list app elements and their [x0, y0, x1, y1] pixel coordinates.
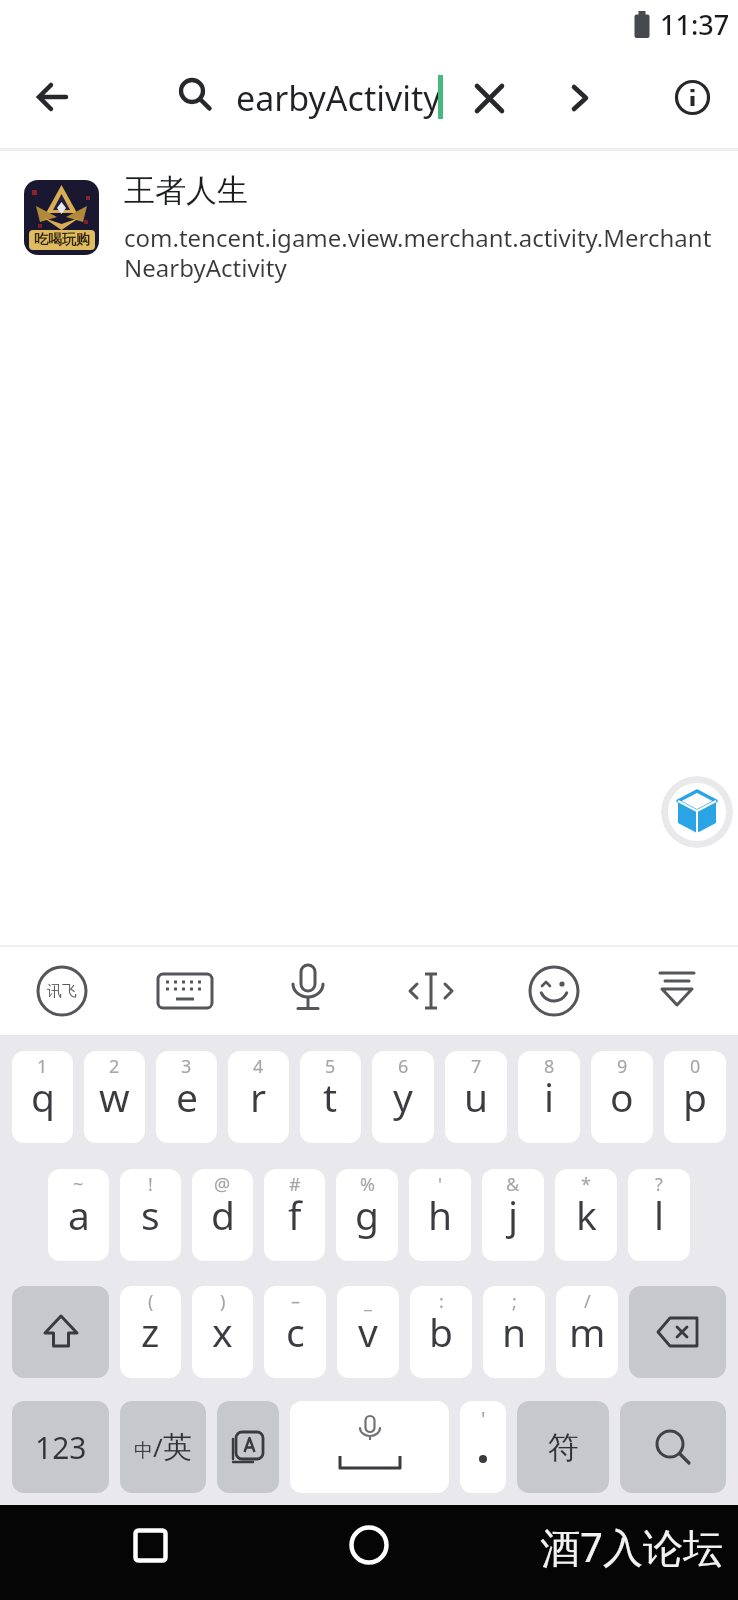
- staticText: 讯飞: [47, 982, 77, 1001]
- staticText: com.tencent.igame.view.merchant.activity…: [124, 221, 712, 284]
- staticText: %: [360, 1172, 375, 1197]
- button[interactable]: &: [482, 1169, 544, 1261]
- button[interactable]: 3: [156, 1051, 217, 1143]
- button[interactable]: [217, 1401, 279, 1493]
- button[interactable]: 5: [300, 1051, 361, 1143]
- button[interactable]: [369, 947, 492, 1035]
- staticText: l: [654, 1188, 665, 1241]
- button[interactable]: [492, 947, 615, 1035]
- staticText: j: [508, 1188, 519, 1241]
- staticText: 123: [35, 1427, 87, 1468]
- staticText: m: [569, 1305, 606, 1358]
- button[interactable]: [126, 1521, 174, 1569]
- button[interactable]: [290, 1401, 449, 1493]
- staticText: ': [438, 1172, 443, 1197]
- button[interactable]: [345, 1521, 393, 1569]
- staticText: k: [576, 1188, 597, 1241]
- button[interactable]: [123, 947, 246, 1035]
- button[interactable]: ;: [483, 1286, 545, 1378]
- button[interactable]: 8: [518, 1051, 580, 1143]
- staticText: 符: [548, 1428, 579, 1467]
- button[interactable]: !: [120, 1169, 181, 1261]
- button[interactable]: [12, 1286, 109, 1378]
- staticText: *: [581, 1172, 591, 1197]
- staticText: 5: [325, 1054, 336, 1079]
- button[interactable]: 7: [445, 1051, 507, 1143]
- button[interactable]: %: [336, 1169, 398, 1261]
- staticText: h: [428, 1188, 453, 1241]
- staticText: x: [212, 1305, 233, 1358]
- staticText: ;: [512, 1289, 517, 1314]
- button[interactable]: ?: [628, 1169, 690, 1261]
- staticText: g: [355, 1188, 379, 1241]
- staticText: #: [289, 1172, 301, 1197]
- staticText: r: [250, 1070, 267, 1123]
- button[interactable]: [668, 73, 716, 121]
- button[interactable]: [629, 1286, 726, 1378]
- button[interactable]: 6: [372, 1051, 434, 1143]
- button[interactable]: [465, 74, 513, 122]
- button[interactable]: 吃喝玩购: [24, 171, 716, 284]
- staticText: !: [148, 1172, 153, 1197]
- button[interactable]: 123: [12, 1401, 109, 1493]
- staticText: earbyActivity: [236, 75, 441, 121]
- button[interactable]: [246, 947, 369, 1035]
- staticText: ?: [655, 1172, 663, 1197]
- button[interactable]: 0: [664, 1051, 726, 1143]
- staticText: n: [502, 1305, 527, 1358]
- staticText: 4: [253, 1054, 264, 1079]
- staticText: 酒7入论坛: [540, 1519, 723, 1574]
- staticText: 0: [690, 1054, 701, 1079]
- staticText: 3: [181, 1054, 192, 1079]
- staticText: –: [291, 1289, 300, 1314]
- button[interactable]: [615, 947, 738, 1035]
- staticText: a: [68, 1188, 90, 1241]
- button[interactable]: /: [556, 1286, 618, 1378]
- staticText: 1: [37, 1054, 48, 1079]
- staticText: 11:37: [660, 6, 730, 43]
- staticText: @: [214, 1172, 231, 1197]
- staticText: ~: [73, 1172, 84, 1197]
- staticText: t: [323, 1070, 338, 1123]
- button[interactable]: (: [120, 1286, 181, 1378]
- button[interactable]: :: [410, 1286, 472, 1378]
- staticText: q: [31, 1070, 55, 1123]
- button[interactable]: 中/英: [120, 1401, 206, 1493]
- staticText: 6: [398, 1054, 409, 1079]
- staticText: b: [429, 1305, 453, 1358]
- button[interactable]: 2: [84, 1051, 145, 1143]
- button[interactable]: ': [409, 1169, 471, 1261]
- staticText: c: [286, 1305, 305, 1358]
- button[interactable]: 4: [228, 1051, 289, 1143]
- staticText: 7: [471, 1054, 482, 1079]
- staticText: &: [506, 1172, 520, 1197]
- staticText: 中/英: [134, 1429, 192, 1466]
- button[interactable]: 讯飞: [0, 947, 123, 1035]
- staticText: 8: [544, 1054, 555, 1079]
- staticText: ': [481, 1405, 486, 1432]
- staticText: u: [464, 1070, 489, 1123]
- staticText: e: [176, 1070, 198, 1123]
- staticText: y: [393, 1070, 413, 1123]
- button[interactable]: 1: [12, 1051, 73, 1143]
- button[interactable]: [620, 1401, 726, 1493]
- staticText: :: [439, 1289, 444, 1314]
- staticText: d: [211, 1188, 235, 1241]
- staticText: i: [544, 1070, 555, 1123]
- button[interactable]: [556, 74, 604, 122]
- button[interactable]: 9: [591, 1051, 653, 1143]
- button[interactable]: *: [555, 1169, 617, 1261]
- staticText: 王者人生: [124, 171, 248, 210]
- button[interactable]: [28, 73, 76, 121]
- button[interactable]: ): [192, 1286, 253, 1378]
- button[interactable]: _: [337, 1286, 399, 1378]
- button[interactable]: ': [460, 1401, 506, 1493]
- button[interactable]: #: [264, 1169, 325, 1261]
- staticText: 吃喝玩购: [34, 231, 90, 249]
- button[interactable]: 符: [517, 1401, 609, 1493]
- staticText: ): [220, 1289, 226, 1314]
- button[interactable]: ~: [48, 1169, 109, 1261]
- button[interactable]: –: [264, 1286, 326, 1378]
- button[interactable]: [661, 776, 733, 848]
- button[interactable]: @: [192, 1169, 253, 1261]
